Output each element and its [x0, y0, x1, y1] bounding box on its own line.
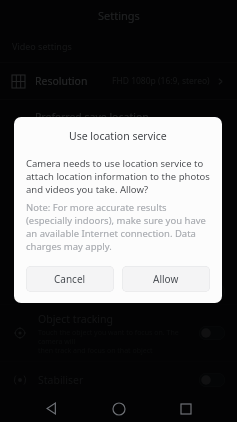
button[interactable]: Preferred save location	[0, 100, 237, 134]
button[interactable]: Toggle	[199, 326, 225, 340]
staticText: Cancel	[54, 272, 86, 286]
staticText: Object tracking	[38, 312, 113, 326]
button[interactable]: Back	[34, 395, 68, 422]
button[interactable]: Beauty mode	[0, 278, 237, 304]
staticText: Video settings	[12, 40, 72, 52]
staticText: Use location service	[69, 129, 167, 143]
staticText: Stabiliser	[38, 373, 84, 387]
button[interactable]: Toggle	[199, 373, 225, 387]
staticText: Settings	[98, 8, 140, 23]
button[interactable]: Allow	[122, 266, 210, 292]
staticText: Note: For more accurate results (especia…	[26, 201, 210, 253]
staticText: FHD 1080p (16:9, stereo)	[112, 75, 210, 87]
button[interactable]: Home	[102, 395, 136, 422]
button[interactable]: Cancel	[26, 266, 114, 292]
staticText: Resolution	[35, 74, 88, 88]
staticText: Camera needs to use location service to …	[26, 157, 210, 196]
button[interactable]: Recent apps	[169, 395, 203, 422]
button[interactable]: Toggle	[199, 284, 225, 298]
staticText: Allow	[153, 272, 179, 286]
staticText: Preferred save location	[35, 110, 149, 124]
button[interactable]: Resolution	[0, 63, 237, 99]
staticText: Beauty mode	[38, 284, 104, 298]
